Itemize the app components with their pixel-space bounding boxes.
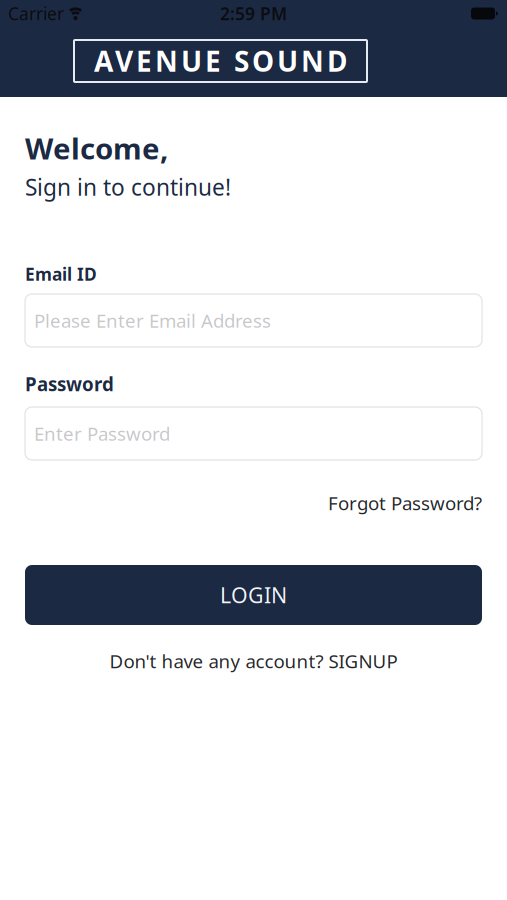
staticText: Enter Password <box>34 421 170 446</box>
staticText: Please Enter Email Address <box>34 308 271 333</box>
staticText: LOGIN <box>220 581 287 609</box>
button[interactable]: Forgot Password? <box>328 493 482 513</box>
staticText: AVENUE SOUND <box>94 42 347 80</box>
staticText: Sign in to continue! <box>25 172 231 202</box>
staticText: Forgot Password? <box>328 491 482 515</box>
staticText: Don't have any account? SIGNUP <box>109 649 397 673</box>
button[interactable]: Don't have any account? SIGNUP <box>109 651 397 671</box>
button[interactable]: LOGIN <box>25 565 482 625</box>
button[interactable]: Please Enter Email Address <box>25 294 482 347</box>
staticText: 2:59 PM <box>220 2 287 25</box>
staticText: Password <box>25 372 114 396</box>
staticText: Email ID <box>25 262 97 285</box>
button[interactable]: Enter Password <box>25 407 482 460</box>
staticText: Carrier <box>8 2 64 25</box>
staticText: Welcome, <box>25 128 168 167</box>
